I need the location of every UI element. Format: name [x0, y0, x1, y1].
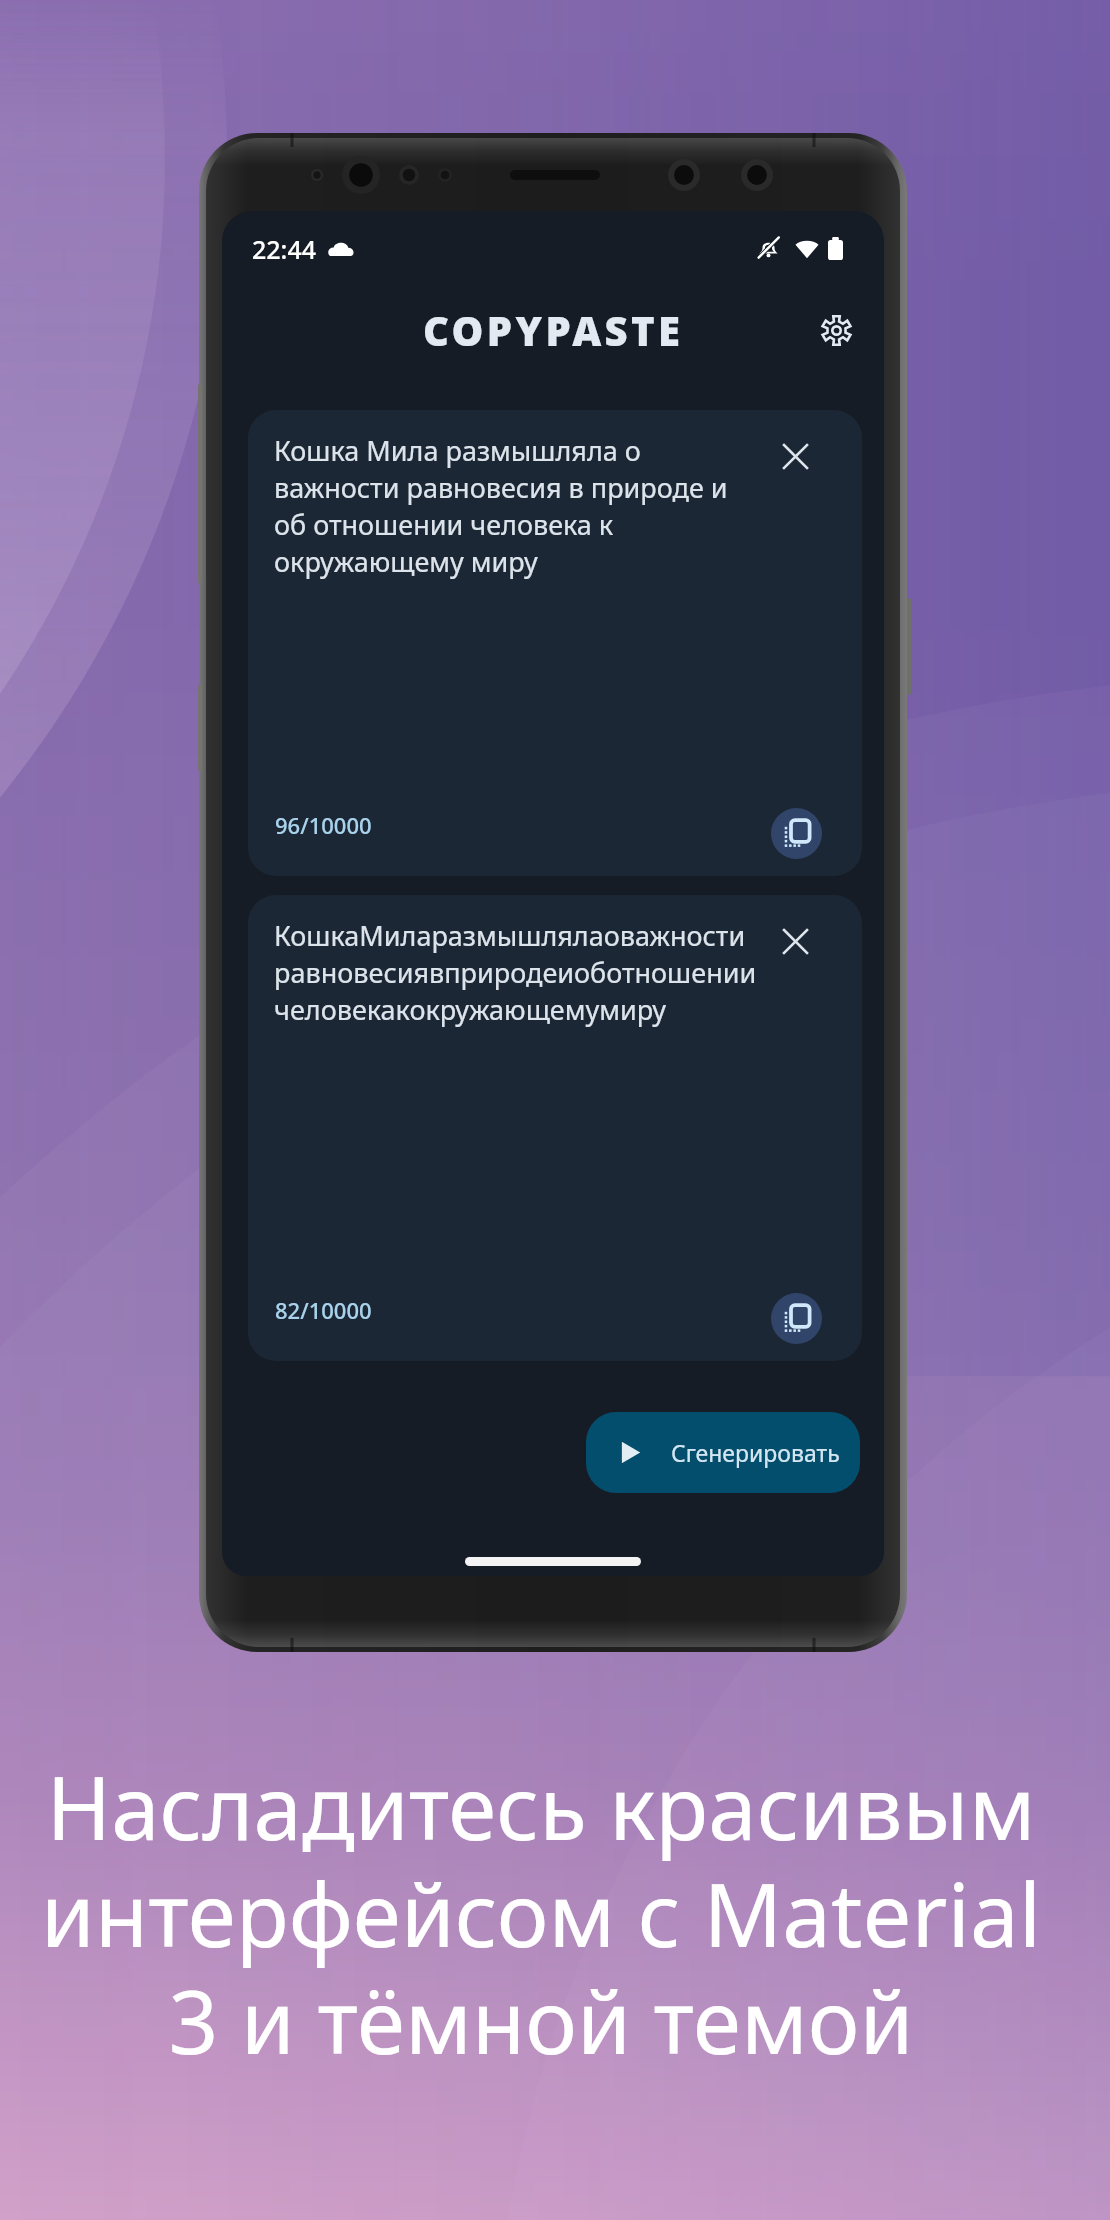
button[interactable]: Delete	[769, 915, 821, 967]
staticText: COPYPASTE	[423, 303, 684, 357]
staticText: Кошка Мила размышляла о важности равнове…	[274, 432, 728, 580]
button[interactable]: Copy	[771, 1293, 822, 1344]
staticText: КошкаМиларазмышлялаоважности равновесияв…	[274, 917, 757, 1028]
staticText: Сгенерировать	[671, 1437, 840, 1468]
button[interactable]: Copy	[771, 808, 822, 859]
button[interactable]: Settings	[810, 304, 862, 356]
button[interactable]: КошкаМиларазмышлялаоважности равновесияв…	[248, 895, 862, 1361]
button[interactable]: Кошка Мила размышляла о важности равнове…	[248, 410, 862, 876]
staticText: 22:44	[252, 232, 317, 266]
staticText: Насладитесь красивым интерфейсом с Mater…	[0, 1747, 1096, 2079]
staticText: 82/10000	[275, 1295, 372, 1325]
button[interactable]: Сгенерировать	[586, 1412, 860, 1493]
staticText: 96/10000	[275, 810, 372, 840]
button[interactable]: Delete	[769, 430, 821, 482]
